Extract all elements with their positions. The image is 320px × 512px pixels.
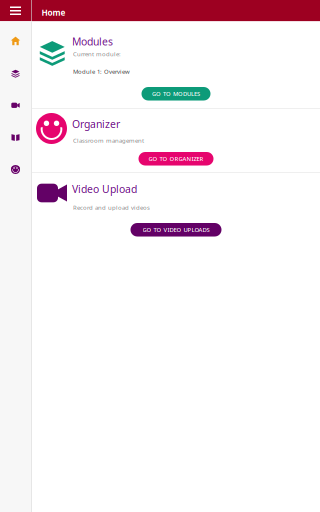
button[interactable]: Home — [0, 36, 31, 45]
staticText: Classroom management — [73, 136, 144, 145]
staticText: GO TO MODULES — [152, 90, 200, 98]
button[interactable]: GO TO VIDEO UPLOADS — [130, 223, 221, 236]
button[interactable]: Video Upload — [0, 101, 31, 109]
staticText: Record and upload videos — [73, 203, 150, 212]
staticText: GO TO ORGANIZER — [148, 155, 203, 163]
button[interactable]: GO TO MODULES — [141, 87, 210, 100]
staticText: GO TO VIDEO UPLOADS — [142, 226, 209, 234]
button[interactable]: Modules — [0, 69, 31, 78]
button[interactable]: Menu — [0, 0, 31, 21]
staticText: Organizer — [72, 117, 120, 131]
staticText: Home — [41, 7, 65, 18]
staticText: Current module: — [73, 50, 121, 58]
button[interactable]: Organizer — [0, 165, 31, 174]
staticText: Module 1: Overview — [73, 67, 130, 76]
staticText: Video Upload — [72, 182, 137, 196]
staticText: Modules — [72, 34, 113, 49]
button[interactable]: GO TO ORGANIZER — [138, 152, 213, 165]
button[interactable]: Library — [0, 133, 31, 141]
